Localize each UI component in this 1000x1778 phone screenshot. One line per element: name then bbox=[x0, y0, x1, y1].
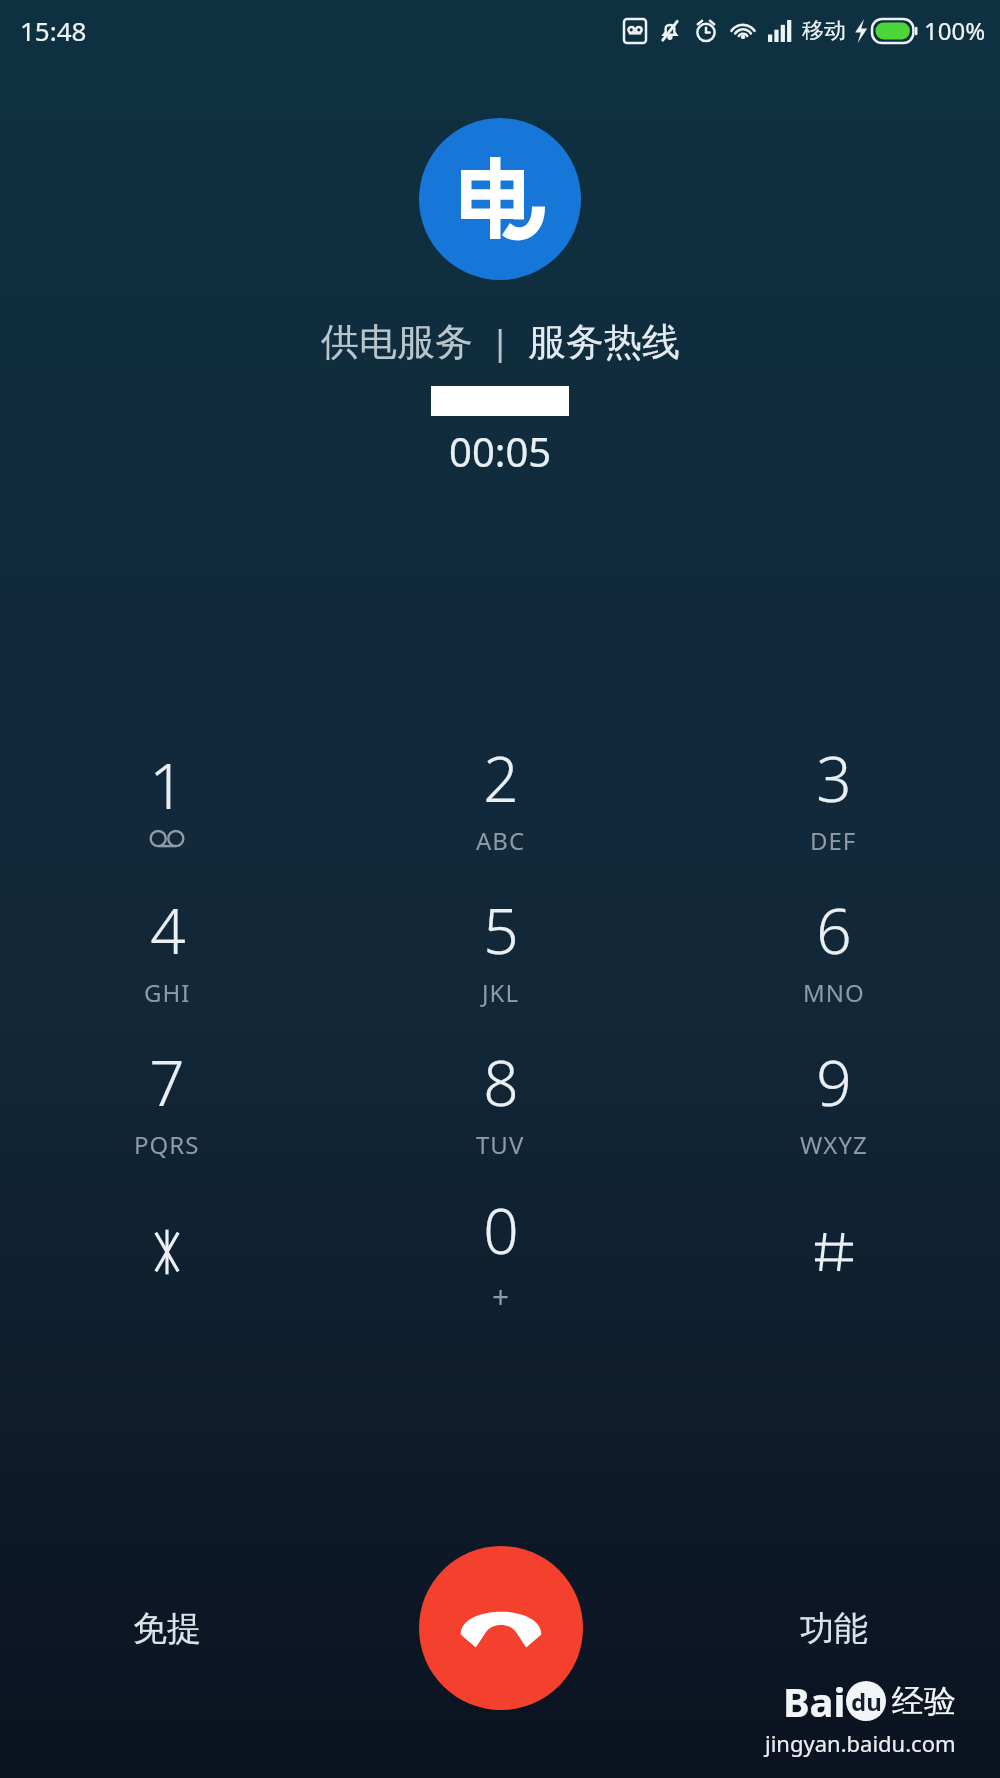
button[interactable]: 1 bbox=[0, 720, 334, 872]
staticText: jingyan.baidu.com bbox=[765, 1728, 956, 1758]
staticText: GHI bbox=[144, 976, 191, 1009]
staticText: 供电服务 bbox=[321, 318, 473, 366]
staticText: 00:05 bbox=[449, 424, 552, 478]
staticText: 7 bbox=[149, 1040, 185, 1124]
staticText: WXYZ bbox=[800, 1128, 868, 1161]
staticText: 9 bbox=[816, 1040, 852, 1124]
staticText: Bai bbox=[783, 1674, 846, 1728]
button[interactable]: 功能 bbox=[667, 1478, 1000, 1778]
button[interactable] bbox=[0, 1176, 334, 1328]
button[interactable]: End call bbox=[419, 1546, 583, 1710]
button[interactable]: 5 bbox=[334, 872, 667, 1024]
button[interactable]: 免提 bbox=[0, 1478, 334, 1778]
staticText: TUV bbox=[476, 1128, 525, 1161]
staticText: | bbox=[473, 319, 528, 365]
staticText: MNO bbox=[803, 976, 865, 1009]
staticText: JKL bbox=[482, 976, 519, 1009]
staticText: 移动 bbox=[802, 17, 846, 45]
button[interactable]: 2 bbox=[334, 720, 667, 872]
staticText: 2 bbox=[483, 736, 519, 820]
staticText: du bbox=[851, 1685, 882, 1718]
button[interactable]: 4 bbox=[0, 872, 334, 1024]
staticText: 服务热线 bbox=[528, 318, 680, 366]
staticText: 8 bbox=[483, 1040, 519, 1124]
staticText: PQRS bbox=[134, 1128, 200, 1161]
staticText: 3 bbox=[816, 736, 852, 820]
staticText: 4 bbox=[150, 888, 186, 972]
staticText: 经验 bbox=[892, 1681, 956, 1721]
button[interactable]: 8 bbox=[334, 1024, 667, 1176]
staticText: DEF bbox=[810, 824, 857, 857]
button[interactable]: 9 bbox=[667, 1024, 1000, 1176]
button[interactable]: 3 bbox=[667, 720, 1000, 872]
staticText: 100% bbox=[924, 14, 986, 47]
staticText: 功能 bbox=[800, 1607, 868, 1650]
staticText: 0 bbox=[483, 1188, 519, 1272]
staticText: + bbox=[492, 1276, 511, 1317]
staticText: 6 bbox=[816, 888, 852, 972]
staticText: 免提 bbox=[133, 1607, 201, 1650]
staticText: 5 bbox=[483, 888, 519, 972]
staticText: ABC bbox=[476, 824, 526, 857]
button[interactable]: 0 bbox=[334, 1176, 667, 1328]
button[interactable]: 7 bbox=[0, 1024, 334, 1176]
button[interactable] bbox=[667, 1176, 1000, 1328]
staticText: 1 bbox=[149, 743, 185, 827]
button[interactable]: 6 bbox=[667, 872, 1000, 1024]
staticText: 15:48 bbox=[20, 13, 87, 48]
